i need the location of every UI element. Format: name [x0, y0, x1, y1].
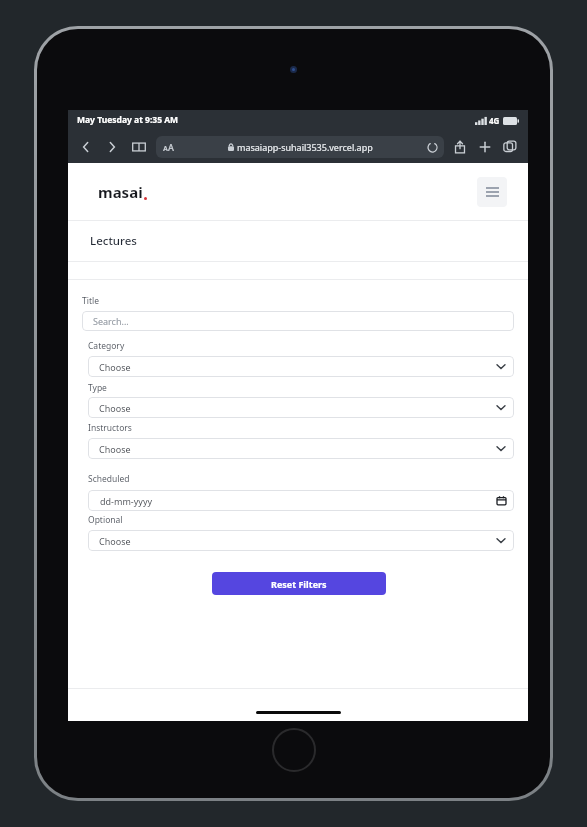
- button[interactable]: Reset Filters: [212, 572, 386, 595]
- button[interactable]: Choose: [88, 438, 514, 459]
- button[interactable]: Forward: [104, 139, 120, 155]
- button[interactable]: Share: [452, 139, 468, 155]
- staticText: Lectures: [90, 233, 137, 249]
- staticText: Scheduled: [88, 473, 130, 485]
- button[interactable]: Back: [78, 139, 94, 155]
- staticText: Choose: [99, 402, 131, 414]
- staticText: dd-mm-yyyy: [100, 495, 153, 507]
- button[interactable]: New Tab: [477, 139, 493, 155]
- button[interactable]: Tabs: [502, 139, 518, 155]
- button[interactable]: Bookmarks: [131, 139, 147, 155]
- button[interactable]: dd-mm-yyyy: [88, 490, 514, 511]
- staticText: Type: [88, 382, 107, 394]
- button[interactable]: Menu: [477, 177, 507, 207]
- staticText: ᴀA: [163, 141, 174, 153]
- button[interactable]: ᴀA: [156, 136, 444, 158]
- staticText: Choose: [99, 535, 131, 547]
- staticText: Instructors: [88, 422, 132, 434]
- staticText: Title: [82, 295, 99, 307]
- staticText: 4G: [489, 115, 500, 126]
- staticText: Reset Filters: [271, 578, 327, 590]
- staticText: May Tuesday at 9:35 AM: [77, 114, 179, 126]
- staticText: Choose: [99, 361, 131, 373]
- staticText: Optional: [88, 514, 123, 526]
- staticText: Choose: [99, 443, 131, 455]
- button[interactable]: Choose: [88, 356, 514, 377]
- button[interactable]: Search...: [82, 311, 514, 331]
- staticText: masaiapp-suhail3535.vercel.app: [237, 141, 373, 153]
- button[interactable]: Choose: [88, 397, 514, 418]
- staticText: masai: [98, 182, 143, 202]
- staticText: Category: [88, 340, 125, 352]
- staticText: Search...: [93, 315, 129, 327]
- button[interactable]: Choose: [88, 530, 514, 551]
